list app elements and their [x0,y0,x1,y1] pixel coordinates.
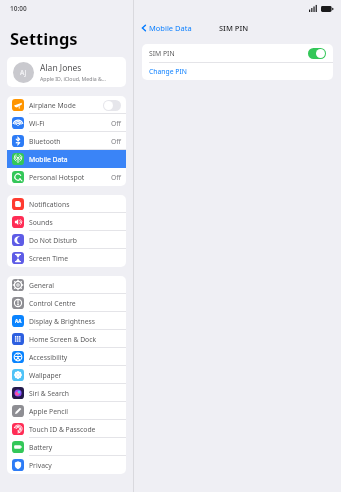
button[interactable]: Battery [7,438,126,456]
button[interactable]: Wallpaper [7,366,126,384]
button[interactable]: Screen Time [7,249,126,267]
staticText: SIM PIN [149,49,308,58]
button[interactable]: Siri & Search [7,384,126,402]
button[interactable]: Airplane Mode [7,96,126,114]
staticText: Home Screen & Dock [29,335,121,344]
button[interactable]: Mobile Data [7,150,126,168]
button[interactable]: Control Centre [7,294,126,312]
staticText: Privacy [29,461,121,470]
button[interactable]: Off [103,100,121,111]
staticText: Wallpaper [29,371,121,380]
staticText: Airplane Mode [29,101,103,110]
staticText: AA [15,318,22,324]
button[interactable]: AA [7,312,126,330]
staticText: Apple ID, iCloud, Media &… [40,75,106,82]
staticText: Mobile Data [29,155,121,164]
staticText: Battery [29,443,121,452]
staticText: Settings [10,27,78,49]
staticText: Personal Hotspot [29,173,111,182]
staticText: AJ [20,68,27,77]
button[interactable]: Privacy [7,456,126,474]
staticText: Screen Time [29,254,121,263]
staticText: General [29,281,121,290]
button[interactable]: Change PIN [142,63,333,80]
button[interactable]: SIM PIN [142,44,333,63]
staticText: SIM PIN [219,23,249,33]
button[interactable]: AJ [7,57,126,87]
staticText: Off [111,137,121,146]
button[interactable]: Bluetooth [7,132,126,150]
button[interactable]: General [7,276,126,294]
staticText: Bluetooth [29,137,111,146]
staticText: Off [111,173,121,182]
staticText: Touch ID & Passcode [29,425,121,434]
staticText: Apple Pencil [29,407,121,416]
button[interactable]: Sounds [7,213,126,231]
staticText: Siri & Search [29,389,121,398]
button[interactable]: Wi-Fi [7,114,126,132]
button[interactable]: Accessibility [7,348,126,366]
staticText: Alan Jones [40,62,82,74]
button[interactable]: Personal Hotspot [7,168,126,186]
staticText: Accessibility [29,353,121,362]
staticText: Control Centre [29,299,121,308]
staticText: Off [111,119,121,128]
button[interactable]: Home Screen & Dock [7,330,126,348]
staticText: Notifications [29,200,121,209]
staticText: Do Not Disturb [29,236,121,245]
staticText: Sounds [29,218,121,227]
button[interactable]: Do Not Disturb [7,231,126,249]
button[interactable]: Apple Pencil [7,402,126,420]
button[interactable]: Touch ID & Passcode [7,420,126,438]
button[interactable]: On [308,48,326,59]
staticText: Mobile Data [149,23,192,33]
staticText: Wi-Fi [29,119,111,128]
staticText: Display & Brightness [29,317,121,326]
button[interactable]: Mobile Data [140,23,192,33]
staticText: 10:00 [10,4,27,13]
staticText: Change PIN [149,67,187,76]
button[interactable]: Notifications [7,195,126,213]
